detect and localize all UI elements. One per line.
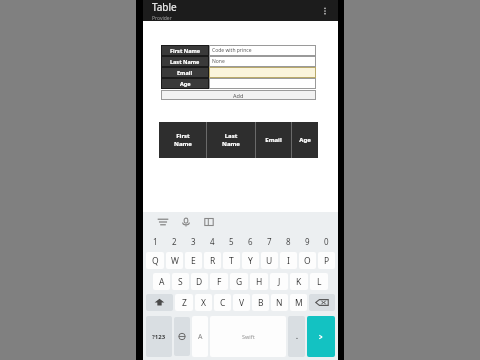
staticText: 7: [267, 236, 272, 247]
button[interactable]: K: [290, 273, 308, 290]
staticText: Last Name: [170, 58, 200, 65]
button[interactable]: Shift: [146, 294, 173, 311]
button[interactable]: 5: [222, 232, 241, 250]
staticText: None: [212, 58, 225, 65]
button[interactable]: Stickers: [202, 215, 216, 229]
staticText: 8: [286, 236, 291, 247]
staticText: First Name: [170, 47, 201, 54]
staticText: Provider: [152, 15, 172, 21]
button[interactable]: .: [288, 316, 305, 357]
staticText: 9: [305, 236, 310, 247]
button[interactable]: G: [230, 273, 248, 290]
button[interactable]: E: [185, 252, 202, 269]
staticText: First Name: [174, 132, 192, 148]
button[interactable]: Q: [146, 252, 164, 269]
staticText: I: [287, 255, 290, 267]
button[interactable]: L: [310, 273, 328, 290]
button[interactable]: X: [195, 294, 212, 311]
staticText: D: [196, 276, 203, 288]
staticText: 4: [210, 236, 215, 247]
button[interactable]: Backspace: [309, 294, 335, 311]
staticText: .: [296, 332, 298, 342]
button[interactable]: 4: [203, 232, 222, 250]
button[interactable]: Menu: [156, 215, 170, 229]
staticText: J: [278, 276, 281, 288]
staticText: R: [210, 255, 216, 267]
staticText: Age: [180, 80, 191, 87]
button[interactable]: F: [210, 273, 228, 290]
staticText: V: [239, 297, 245, 309]
button[interactable]: H: [250, 273, 268, 290]
button[interactable]: O: [299, 252, 316, 269]
staticText: L: [317, 276, 322, 288]
staticText: Y: [248, 255, 253, 267]
button[interactable]: I: [280, 252, 297, 269]
staticText: Email: [265, 136, 282, 144]
button[interactable]: Email: [256, 122, 291, 158]
button[interactable]: 1: [145, 232, 165, 250]
button[interactable]: U: [261, 252, 278, 269]
staticText: M: [295, 297, 303, 309]
button[interactable]: J: [270, 273, 288, 290]
button[interactable]: B: [252, 294, 269, 311]
button[interactable]: 8: [279, 232, 298, 250]
button[interactable]: None: [209, 56, 316, 67]
button[interactable]: [209, 67, 316, 78]
button[interactable]: M: [290, 294, 307, 311]
button[interactable]: Y: [242, 252, 259, 269]
button[interactable]: W: [166, 252, 183, 269]
button[interactable]: First Name: [159, 122, 206, 158]
staticText: A: [159, 276, 165, 288]
button[interactable]: Voice input: [179, 215, 193, 229]
button[interactable]: 2: [165, 232, 184, 250]
button[interactable]: Add: [161, 90, 316, 100]
button[interactable]: [209, 78, 316, 89]
staticText: 6: [248, 236, 253, 247]
staticText: X: [201, 297, 206, 309]
button[interactable]: Enter: [307, 316, 335, 357]
button[interactable]: A: [153, 273, 170, 290]
staticText: U: [266, 255, 273, 267]
staticText: H: [256, 276, 263, 288]
button[interactable]: S: [172, 273, 189, 290]
button[interactable]: V: [233, 294, 250, 311]
staticText: T: [229, 255, 234, 267]
button[interactable]: N: [271, 294, 288, 311]
staticText: O: [304, 255, 311, 267]
button[interactable]: T: [223, 252, 240, 269]
staticText: Table: [152, 0, 177, 14]
button[interactable]: 9: [298, 232, 317, 250]
button[interactable]: C: [214, 294, 231, 311]
button[interactable]: Age: [292, 122, 318, 158]
button[interactable]: Swift: [210, 316, 286, 357]
button[interactable]: Z: [175, 294, 193, 311]
staticText: 3: [191, 236, 196, 247]
button[interactable]: P: [318, 252, 335, 269]
staticText: S: [178, 276, 183, 288]
button[interactable]: A: [192, 316, 208, 357]
staticText: G: [236, 276, 243, 288]
button[interactable]: Language: [174, 317, 190, 356]
button[interactable]: R: [204, 252, 221, 269]
staticText: P: [324, 255, 330, 267]
staticText: Code with prince: [212, 47, 252, 54]
staticText: 0: [324, 236, 329, 247]
staticText: Swift: [242, 333, 255, 340]
button[interactable]: ?123: [146, 316, 172, 357]
button[interactable]: 0: [317, 232, 336, 250]
button[interactable]: 7: [260, 232, 279, 250]
button[interactable]: 3: [184, 232, 203, 250]
staticText: K: [296, 276, 302, 288]
staticText: N: [276, 297, 283, 309]
button[interactable]: Code with prince: [209, 45, 316, 56]
staticText: Email: [177, 69, 193, 76]
staticText: Last Name: [222, 132, 240, 148]
button[interactable]: More options: [316, 2, 334, 20]
button[interactable]: 6: [241, 232, 260, 250]
button[interactable]: D: [191, 273, 208, 290]
staticText: A: [198, 332, 203, 342]
button[interactable]: Last Name: [207, 122, 255, 158]
staticText: E: [191, 255, 196, 267]
staticText: Age: [299, 136, 311, 144]
staticText: ?123: [152, 333, 166, 341]
